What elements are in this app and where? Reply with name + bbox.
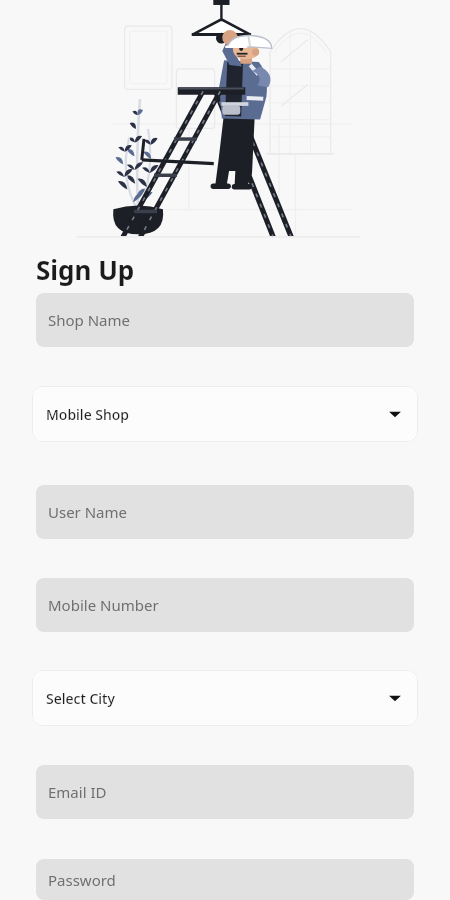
- button[interactable]: Shop Name: [36, 293, 414, 347]
- button[interactable]: Mobile Number: [36, 578, 414, 632]
- staticText: Mobile Number: [48, 595, 159, 615]
- button[interactable]: User Name: [36, 485, 414, 539]
- other: Open dropdown: [388, 407, 402, 421]
- button[interactable]: Mobile Shop: [32, 386, 418, 442]
- staticText: Sign Up: [36, 252, 135, 287]
- staticText: User Name: [48, 502, 128, 522]
- button[interactable]: Password: [36, 859, 414, 900]
- staticText: Mobile Shop: [46, 405, 388, 424]
- staticText: Email ID: [48, 782, 107, 802]
- staticText: Shop Name: [48, 310, 131, 330]
- button[interactable]: Select City: [32, 670, 418, 726]
- button[interactable]: Email ID: [36, 765, 414, 819]
- staticText: Select City: [46, 689, 388, 708]
- other: Open dropdown: [388, 691, 402, 705]
- staticText: Password: [48, 870, 116, 890]
